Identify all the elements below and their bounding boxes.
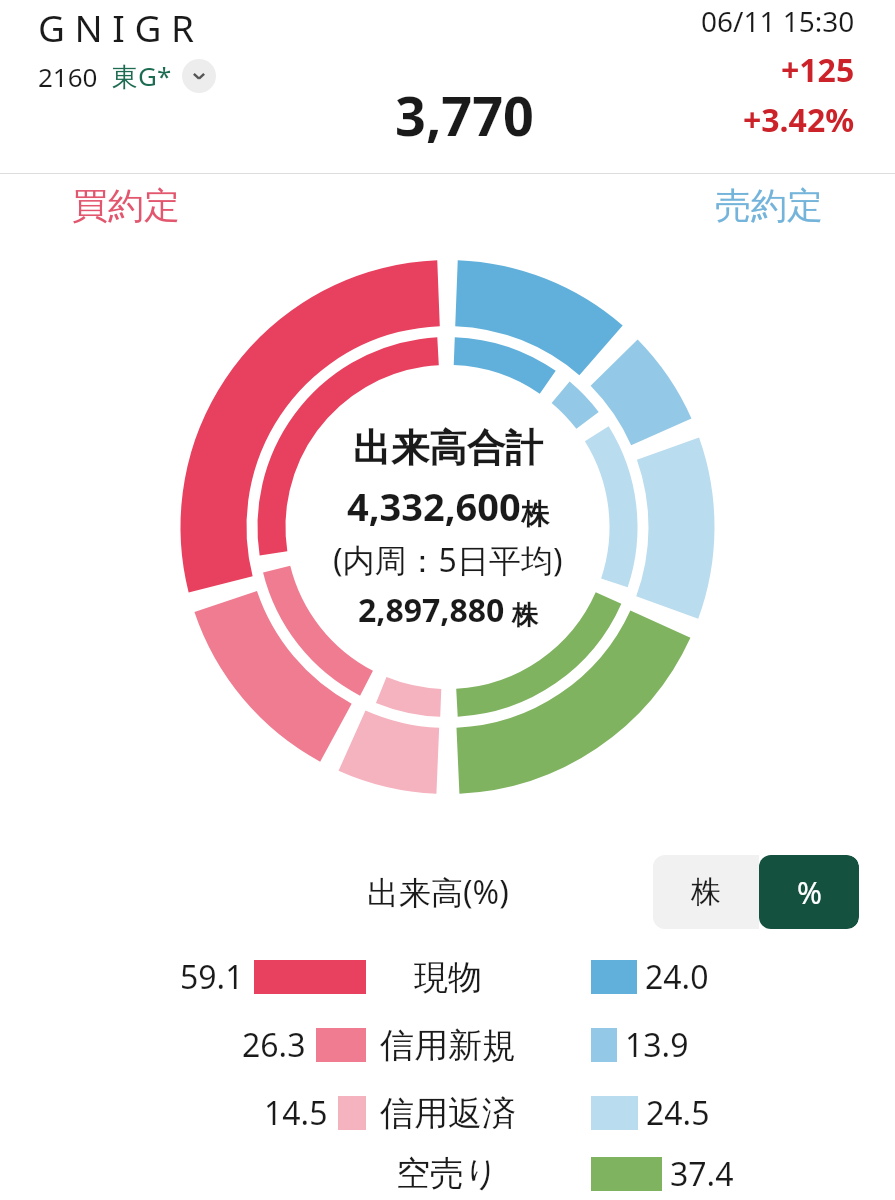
staticText: 株 (505, 596, 538, 632)
staticText: 24.0 (645, 955, 709, 999)
staticText: 出来高合計 (353, 424, 543, 472)
button[interactable]: % (759, 855, 859, 929)
staticText: 信用新規 (380, 1024, 516, 1067)
staticText: 06/11 15:30 (701, 2, 855, 40)
staticText: +3.42% (743, 98, 855, 142)
staticText: % (797, 872, 822, 913)
staticText: G N I G R (38, 2, 195, 52)
staticText: 4,332,600 (347, 480, 521, 532)
staticText: 37.4 (670, 1152, 734, 1196)
staticText: 現物 (414, 956, 482, 999)
button[interactable]: Expand market info (182, 59, 216, 93)
staticText: +125 (781, 48, 855, 92)
staticText: 株 (521, 497, 549, 532)
staticText: 24.5 (646, 1091, 710, 1135)
staticText: 売約定 (715, 183, 823, 228)
staticText: 3,770 (395, 78, 534, 152)
button[interactable]: 14.5 (0, 1079, 895, 1147)
staticText: 空売り (396, 1152, 499, 1195)
button[interactable]: 株 (653, 855, 759, 929)
staticText: 59.1 (180, 955, 244, 999)
staticText: 買約定 (72, 183, 180, 228)
button[interactable]: 59.1 (0, 943, 895, 1011)
staticText: 2,897,880 (358, 588, 505, 632)
staticText: 14.5 (264, 1091, 328, 1135)
staticText: 出来高(%) (367, 870, 509, 914)
button[interactable]: 26.3 (0, 1011, 895, 1079)
staticText: 信用返済 (380, 1092, 516, 1135)
staticText: 東G* (112, 58, 172, 94)
staticText: 13.9 (625, 1023, 689, 1067)
button[interactable]: 空売り (0, 1147, 895, 1200)
staticText: (内周：5日平均) (333, 538, 563, 582)
staticText: 株 (691, 873, 721, 911)
staticText: 2160 (38, 59, 98, 94)
staticText: 26.3 (242, 1023, 306, 1067)
